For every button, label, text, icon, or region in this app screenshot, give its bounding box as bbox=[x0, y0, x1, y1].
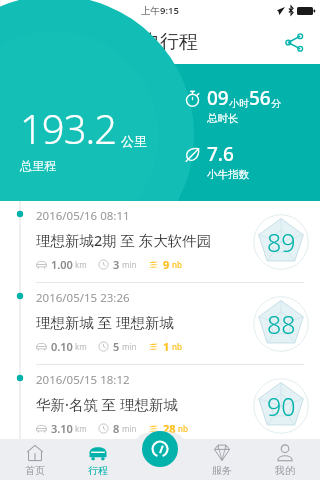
button[interactable]: 首页 bbox=[7, 442, 63, 477]
staticText: min bbox=[122, 341, 137, 352]
staticText: 9 bbox=[163, 257, 170, 272]
staticText: 3 bbox=[113, 257, 120, 272]
button[interactable]: 2016/05/15 17:40 bbox=[0, 447, 320, 480]
staticText: 2016/05/15 17:40 bbox=[36, 454, 130, 470]
button[interactable]: Ride bbox=[142, 431, 178, 467]
staticText: 8 bbox=[113, 421, 120, 436]
staticText: 0.10 bbox=[51, 339, 73, 354]
staticText: 总时长 bbox=[207, 112, 239, 125]
button[interactable]: 2016/05/16 08:11 bbox=[0, 201, 320, 283]
staticText: 1 bbox=[163, 339, 170, 354]
staticText: 小牛指数 bbox=[207, 168, 249, 181]
staticText: 7.6 bbox=[207, 141, 234, 167]
staticText: 行程 bbox=[88, 464, 108, 477]
staticText: 56 bbox=[249, 85, 271, 111]
staticText: 28 bbox=[163, 421, 176, 436]
button[interactable]: 2016/05/15 18:12 bbox=[0, 365, 320, 447]
button[interactable]: 行程 bbox=[70, 442, 126, 477]
staticText: km bbox=[75, 341, 87, 352]
staticText: 89 bbox=[267, 225, 296, 259]
staticText: nb bbox=[178, 423, 188, 434]
button[interactable]: Share bbox=[276, 24, 312, 60]
staticText: 首页 bbox=[25, 464, 45, 477]
staticText: 小时 bbox=[229, 97, 249, 110]
staticText: 服务 bbox=[212, 464, 232, 477]
staticText: 193.2 bbox=[20, 101, 117, 155]
staticText: 09 bbox=[207, 85, 229, 111]
staticText: 历史行程 bbox=[122, 30, 198, 54]
staticText: 理想新城 至 理想新城 bbox=[36, 312, 175, 332]
staticText: 2016/05/16 08:11 bbox=[36, 208, 130, 224]
staticText: 分 bbox=[271, 97, 281, 110]
staticText: 总里程 bbox=[20, 158, 56, 173]
staticText: 3.10 bbox=[51, 421, 73, 436]
staticText: 理想新城2期 至 东大软件园 bbox=[36, 230, 212, 250]
staticText: 我的 bbox=[275, 464, 295, 477]
staticText: 2016/05/15 18:12 bbox=[36, 372, 130, 388]
staticText: nb bbox=[172, 341, 182, 352]
staticText: 2016/05/15 23:26 bbox=[36, 290, 130, 306]
staticText: 公里 bbox=[121, 133, 147, 149]
staticText: min bbox=[122, 423, 137, 434]
staticText: nb bbox=[172, 259, 182, 270]
button[interactable]: 我的 bbox=[257, 442, 313, 477]
staticText: 1.00 bbox=[51, 257, 73, 272]
staticText: km bbox=[75, 259, 87, 270]
button[interactable]: 2016/05/15 23:26 bbox=[0, 283, 320, 365]
staticText: 5 bbox=[113, 339, 120, 354]
staticText: 87 bbox=[267, 447, 296, 480]
staticText: min bbox=[122, 259, 137, 270]
staticText: 华新·名筑 至 理想新城 bbox=[36, 394, 178, 414]
staticText: km bbox=[75, 423, 87, 434]
button[interactable]: 服务 bbox=[194, 442, 250, 477]
staticText: 90 bbox=[267, 389, 296, 423]
staticText: 上午9:15 bbox=[141, 4, 179, 17]
staticText: 88 bbox=[267, 307, 296, 341]
